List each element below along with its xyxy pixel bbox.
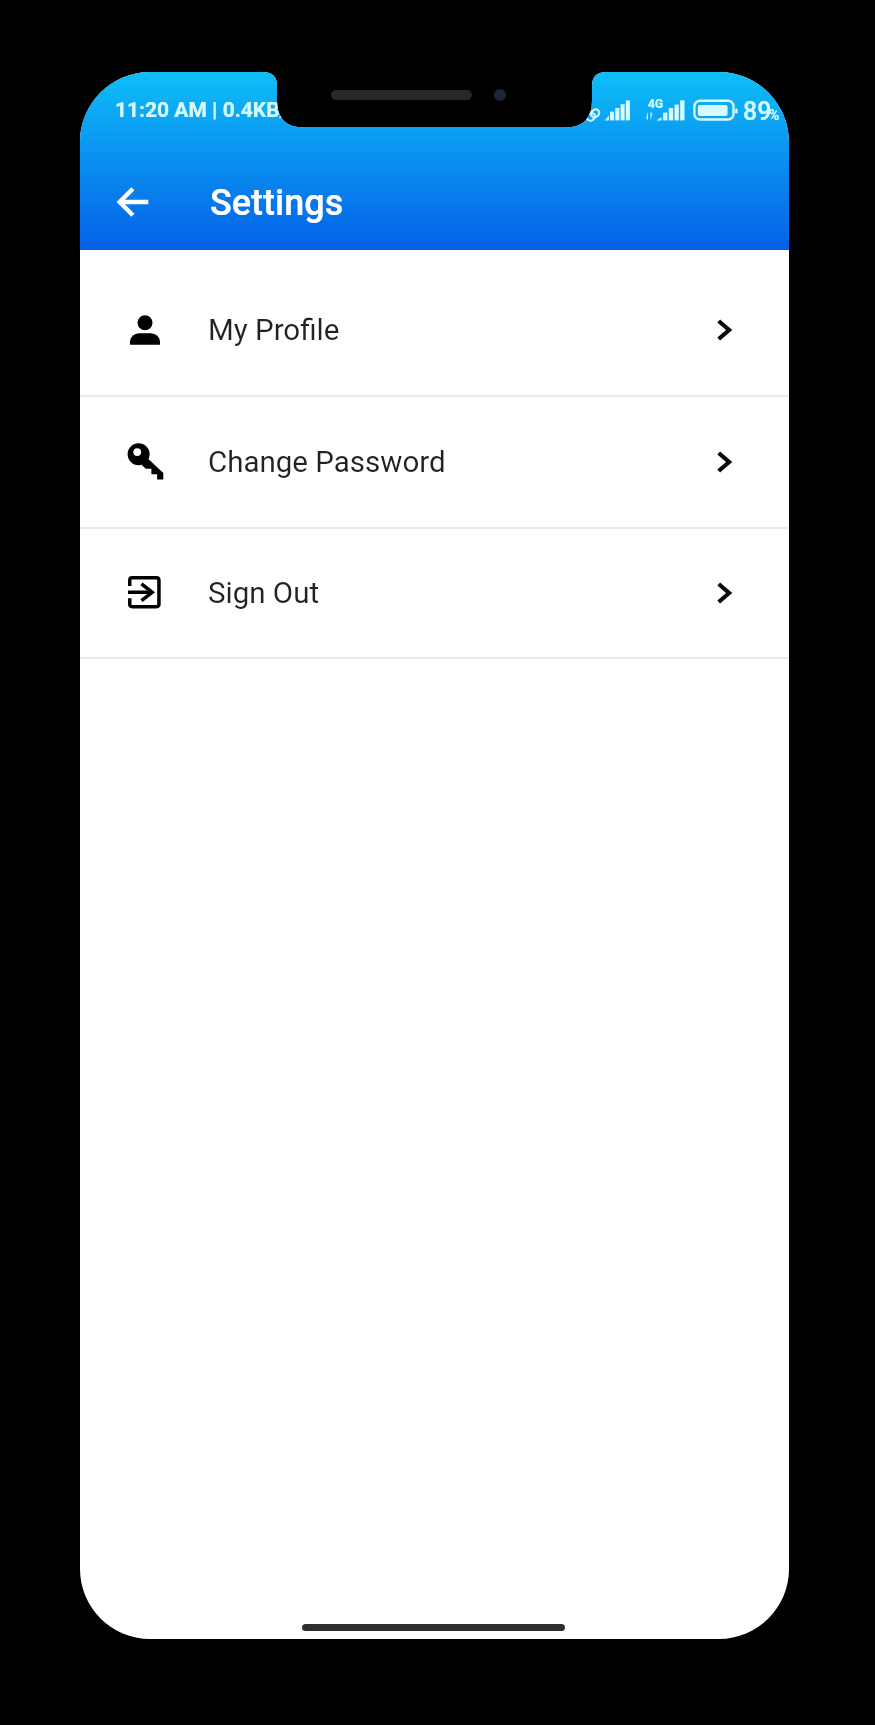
staticText: Sign Out [208, 576, 320, 611]
staticText: 11:20 AM | 0.4KB/s [115, 98, 299, 123]
staticText: Settings [210, 182, 344, 224]
staticText: My Profile [208, 313, 340, 348]
staticText: Change Password [208, 445, 446, 480]
staticText: 89 [743, 97, 772, 126]
button[interactable]: Sign Out [80, 529, 789, 657]
button[interactable]: Change Password [80, 397, 789, 527]
button[interactable]: My Profile [80, 265, 789, 395]
staticText: % [769, 107, 780, 123]
staticText: 4G [648, 97, 664, 111]
button[interactable]: Back [106, 176, 158, 228]
